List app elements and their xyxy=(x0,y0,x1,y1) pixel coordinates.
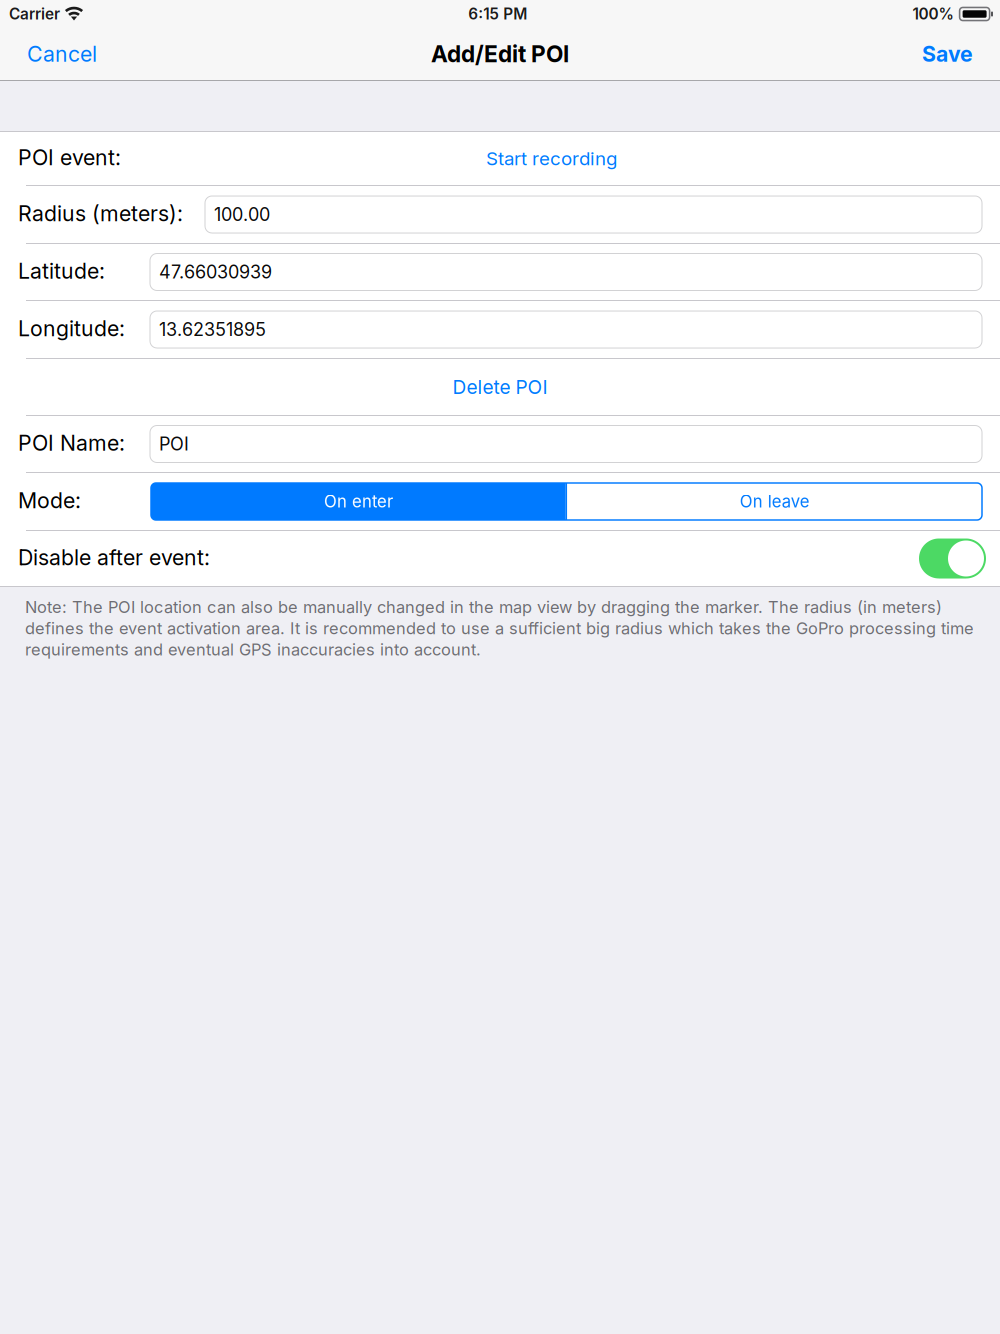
staticText: POI xyxy=(159,433,189,455)
button[interactable]: Delete POI xyxy=(0,359,1000,415)
button[interactable]: On enter xyxy=(151,483,566,520)
staticText: Mode: xyxy=(18,488,81,513)
staticText: Start recording xyxy=(486,147,617,170)
staticText: Delete POI xyxy=(452,375,547,399)
staticText: 6:15 PM xyxy=(468,5,527,23)
staticText: Note: The POI location can also be manua… xyxy=(25,597,974,659)
staticText: Save xyxy=(922,41,973,67)
staticText: 100.00 xyxy=(214,204,270,225)
staticText: 47.66030939 xyxy=(159,261,272,283)
button[interactable]: Cancel xyxy=(0,28,111,80)
button[interactable]: Save xyxy=(908,28,1000,80)
staticText: On enter xyxy=(324,491,393,512)
staticText: POI event: xyxy=(18,145,121,170)
staticText: Disable after event: xyxy=(18,545,210,570)
staticText: POI Name: xyxy=(18,430,125,456)
button[interactable]: POI event: xyxy=(0,132,1000,185)
button[interactable]: On leave xyxy=(567,483,982,520)
staticText: Latitude: xyxy=(18,258,105,284)
staticText: 100% xyxy=(913,5,954,23)
staticText: Carrier xyxy=(9,5,60,23)
staticText: Longitude: xyxy=(18,316,125,341)
staticText: Cancel xyxy=(27,41,97,67)
staticText: On leave xyxy=(740,491,810,512)
staticText: Radius (meters): xyxy=(18,201,183,226)
staticText: 13.62351895 xyxy=(159,319,266,340)
staticText: Add/Edit POI xyxy=(431,40,569,68)
